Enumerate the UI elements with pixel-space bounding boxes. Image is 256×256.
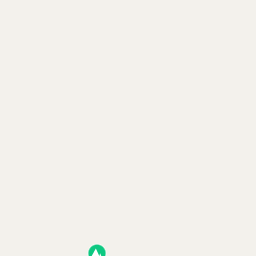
button[interactable]: App logo <box>88 244 105 256</box>
